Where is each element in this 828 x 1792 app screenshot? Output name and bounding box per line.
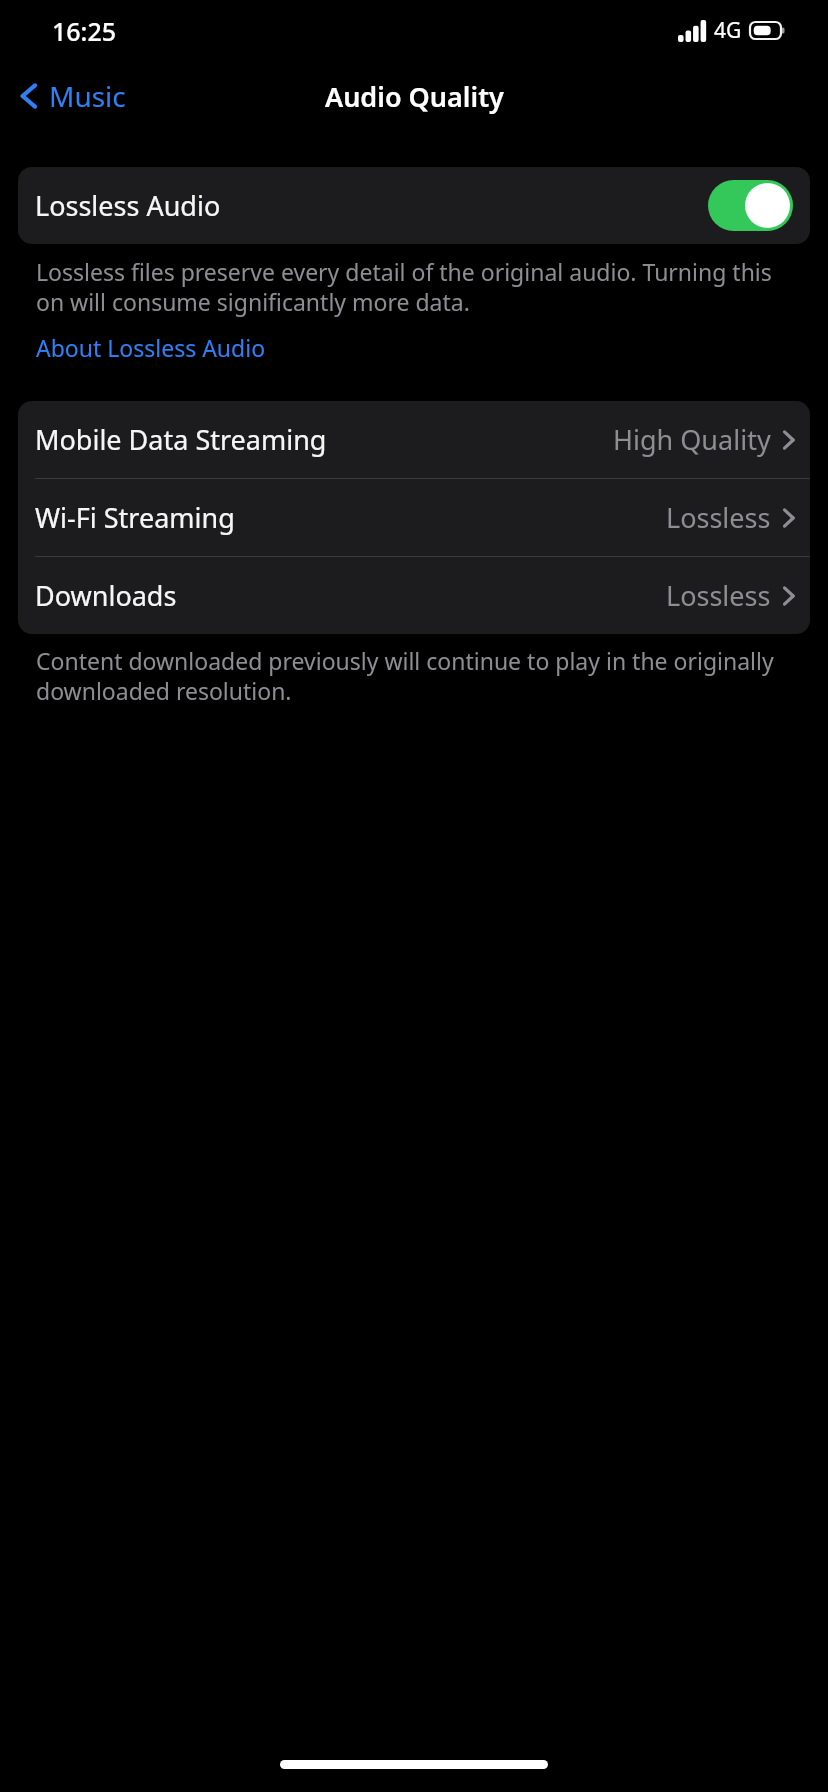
staticText: Downloads [35, 577, 666, 614]
button[interactable]: Lossless Audio [18, 167, 810, 244]
staticText: Lossless [666, 577, 771, 614]
staticText: Lossless Audio [35, 187, 708, 224]
staticText: 16:25 [52, 14, 117, 48]
button[interactable]: Wi-Fi Streaming [18, 479, 810, 556]
button[interactable]: Lossless Audio toggle, on [708, 180, 793, 231]
staticText: Lossless [666, 499, 771, 536]
button[interactable]: Mobile Data Streaming [18, 401, 810, 478]
staticText: Wi-Fi Streaming [35, 499, 666, 536]
staticText: Lossless files preserve every detail of … [36, 256, 786, 318]
button[interactable]: Music [0, 69, 138, 123]
button[interactable]: Downloads [18, 557, 810, 634]
staticText: Music [49, 77, 126, 115]
staticText: High Quality [613, 421, 771, 458]
staticText: Audio Quality [325, 78, 504, 115]
staticText: Mobile Data Streaming [35, 421, 613, 458]
staticText: Content downloaded previously will conti… [36, 645, 786, 707]
button[interactable]: About Lossless Audio [26, 330, 276, 365]
staticText: 4G [714, 16, 742, 45]
staticText: About Lossless Audio [36, 332, 266, 363]
